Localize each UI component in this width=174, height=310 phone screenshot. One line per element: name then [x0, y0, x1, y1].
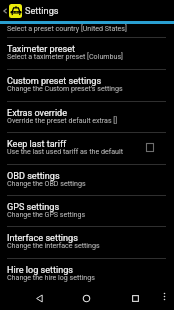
staticText: Change the OBD settings: [7, 179, 86, 187]
staticText: Override the preset default extras []: [7, 116, 118, 124]
staticText: GPS settings: [7, 202, 60, 213]
staticText: Select a taximeter preset [Columbus]: [7, 52, 123, 60]
button[interactable]: Back: [27, 286, 51, 310]
staticText: Keep last tariff: [7, 139, 67, 150]
staticText: Settings: [25, 5, 59, 16]
button[interactable]: Keep last tariff: [0, 133, 174, 165]
button[interactable]: Hire log settings: [0, 259, 174, 286]
button[interactable]: Interface settings: [0, 227, 174, 259]
staticText: Hire log settings: [7, 265, 74, 276]
staticText: Interface settings: [7, 233, 78, 244]
button[interactable]: Taximeter preset: [0, 38, 174, 70]
staticText: Custom preset settings: [7, 76, 102, 87]
staticText: Change the hire log settings: [7, 273, 95, 281]
button[interactable]: OBD settings: [0, 165, 174, 196]
button[interactable]: Home: [74, 286, 98, 310]
staticText: Use the last used tariff as the default: [7, 147, 124, 155]
staticText: Extras override: [7, 108, 68, 119]
staticText: OBD settings: [7, 171, 60, 182]
button[interactable]: Extras override: [0, 102, 174, 133]
staticText: Change the GPS settings: [7, 210, 86, 218]
button[interactable]: Recent apps: [123, 286, 147, 310]
staticText: Change the interface settings: [7, 241, 100, 249]
button[interactable]: GPS settings: [0, 196, 174, 227]
staticText: Select a preset country [United States]: [7, 24, 127, 32]
button[interactable]: Select a preset country [United States]: [0, 24, 174, 38]
button[interactable]: Navigate up: [0, 0, 9, 21]
staticText: Taximeter preset: [7, 44, 75, 55]
button[interactable]: More options: [154, 286, 174, 306]
button[interactable]: Custom preset settings: [0, 70, 174, 102]
staticText: Change the Custom preset's settings: [7, 84, 123, 92]
